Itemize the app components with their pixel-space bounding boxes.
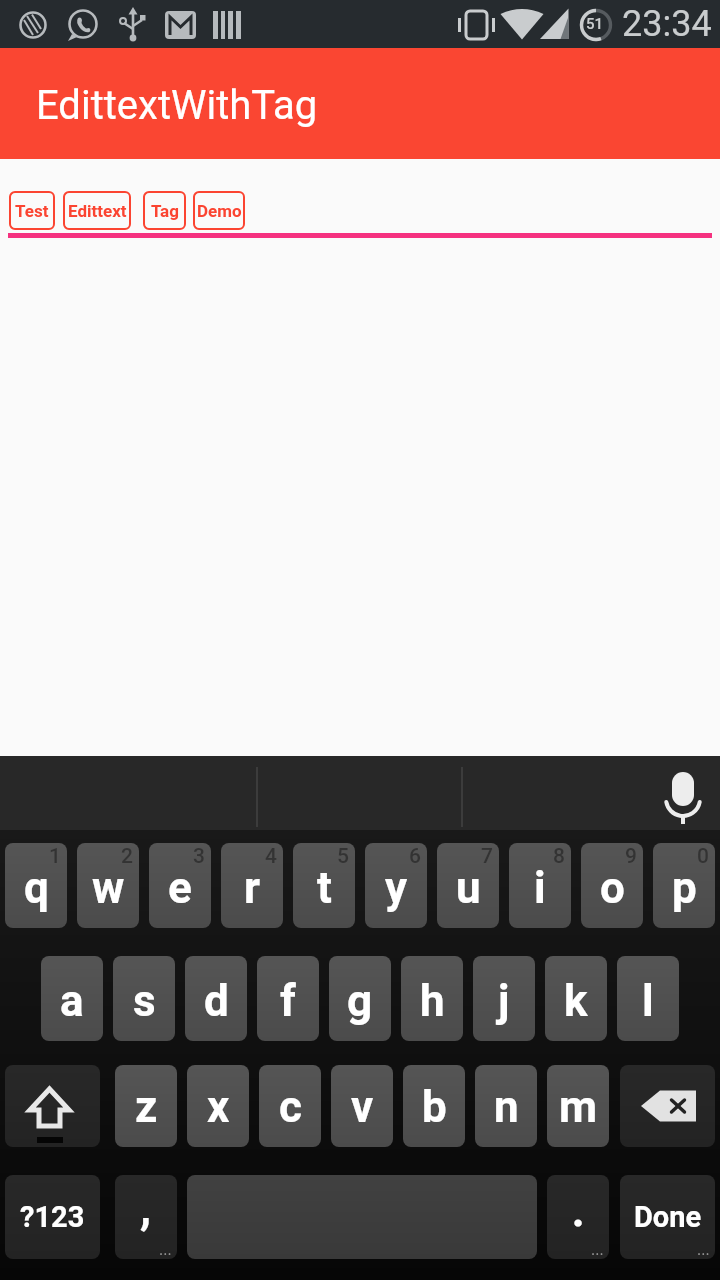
staticText: u (456, 862, 481, 914)
staticText: 9 (625, 844, 637, 869)
staticText: l (642, 975, 654, 1027)
staticText: s (133, 975, 156, 1027)
staticText: ... (159, 1240, 172, 1259)
staticText: z (135, 1081, 158, 1133)
staticText: Test (15, 201, 49, 221)
staticText: EdittextWithTag (36, 82, 318, 129)
staticText: , (140, 1178, 152, 1237)
staticText: 4 (265, 844, 277, 869)
staticText: 8 (553, 844, 565, 869)
staticText: e (168, 862, 192, 914)
staticText: Edittext (68, 201, 127, 221)
staticText: y (385, 862, 408, 914)
staticText: f (280, 975, 296, 1027)
staticText: Tag (151, 201, 179, 221)
staticText: t (317, 862, 332, 914)
staticText: w (92, 862, 125, 914)
staticText: 0 (697, 844, 709, 869)
staticText: 23:34 (622, 3, 712, 45)
staticText: Demo (197, 201, 242, 221)
staticText: x (207, 1081, 230, 1133)
staticText: q (24, 862, 49, 914)
staticText: 2 (121, 844, 133, 869)
staticText: ... (591, 1240, 604, 1259)
staticText: o (600, 862, 625, 914)
staticText: Done (634, 1200, 702, 1234)
staticText: b (422, 1081, 447, 1133)
staticText: 51 (586, 15, 605, 35)
staticText: n (494, 1081, 519, 1133)
staticText: 1 (49, 844, 61, 869)
staticText: 5 (337, 844, 349, 869)
staticText: r (244, 862, 261, 914)
staticText: d (204, 975, 229, 1027)
staticText: . (571, 1178, 586, 1239)
staticText: j (498, 975, 510, 1027)
staticText: m (559, 1081, 598, 1133)
staticText: ... (697, 1240, 710, 1259)
staticText: i (534, 862, 546, 914)
staticText: 6 (409, 844, 421, 869)
staticText: k (564, 975, 588, 1027)
staticText: 7 (481, 844, 493, 869)
staticText: p (672, 862, 697, 914)
staticText: g (347, 975, 373, 1027)
staticText: 3 (193, 844, 205, 869)
staticText: a (60, 975, 84, 1027)
staticText: v (351, 1081, 374, 1133)
staticText: ?123 (20, 1200, 85, 1234)
staticText: h (420, 975, 445, 1027)
staticText: c (279, 1081, 302, 1133)
